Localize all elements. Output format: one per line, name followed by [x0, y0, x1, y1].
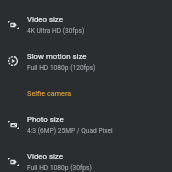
- staticText: Video size: [27, 152, 63, 161]
- button[interactable]: Slow motion size: [0, 43, 172, 81]
- staticText: Photo size: [27, 115, 64, 124]
- button[interactable]: Video size: [0, 6, 172, 44]
- staticText: Full HD 1080p (30fps): [27, 164, 92, 172]
- staticText: 4K Ultra HD (30fps): [27, 27, 85, 35]
- staticText: Full HD 1080p (120fps): [27, 64, 96, 72]
- staticText: Selfie camera: [27, 89, 72, 97]
- button[interactable]: Photo size: [0, 106, 172, 144]
- staticText: Slow motion size: [27, 52, 87, 61]
- staticText: 4:3 (6MP) 25MP / Quad Pixel: [27, 127, 113, 135]
- staticText: Video size: [27, 15, 63, 24]
- button[interactable]: Video size: [0, 143, 172, 172]
